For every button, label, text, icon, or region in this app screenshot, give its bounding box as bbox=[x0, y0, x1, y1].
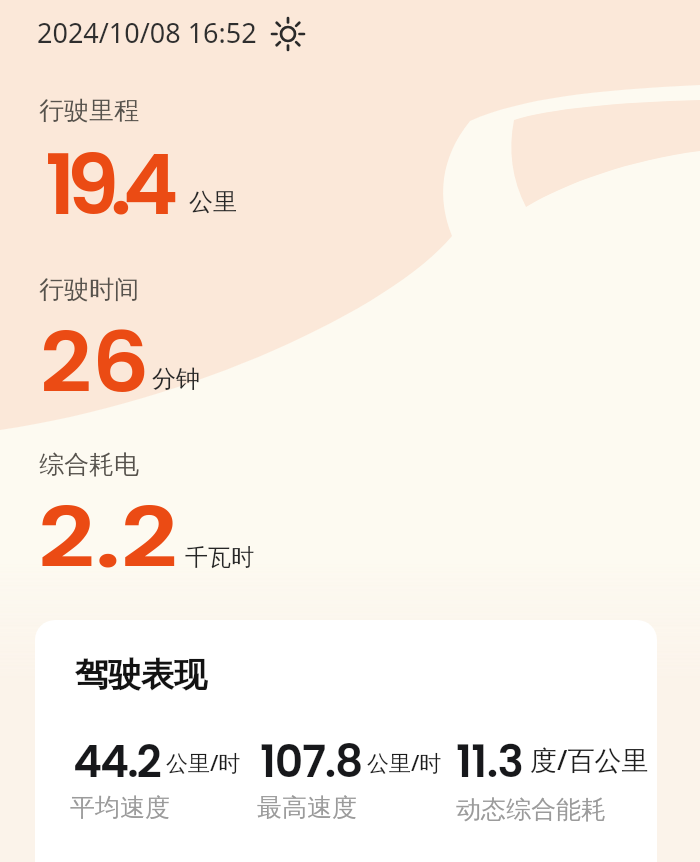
staticText: 分钟 bbox=[152, 364, 200, 394]
button[interactable]: 2024/10/08 16:52 bbox=[30, 10, 250, 47]
staticText: 2024/10/08 16:52 bbox=[37, 14, 257, 51]
staticText: 千瓦时 bbox=[185, 543, 254, 572]
staticText: 公里 bbox=[189, 187, 237, 217]
staticText: 综合耗电 bbox=[39, 449, 139, 480]
staticText: 公里/时 bbox=[367, 747, 442, 777]
staticText: 平均速度 bbox=[70, 792, 170, 823]
staticText: 度/百公里 bbox=[530, 741, 649, 778]
button[interactable]: 驾驶表现 bbox=[35, 620, 657, 862]
staticText: 最高速度 bbox=[257, 792, 357, 823]
staticText: 11.3 bbox=[456, 731, 524, 793]
staticText: 动态综合能耗 bbox=[456, 794, 606, 825]
staticText: 公里/时 bbox=[166, 747, 241, 777]
staticText: 2.2 bbox=[38, 479, 178, 597]
staticText: 行驶时间 bbox=[39, 274, 139, 305]
staticText: 19.4 bbox=[45, 126, 170, 244]
staticText: 26 bbox=[40, 304, 150, 422]
staticText: 107.8 bbox=[260, 731, 363, 793]
staticText: 驾驶表现 bbox=[75, 654, 207, 696]
staticText: 44.2 bbox=[73, 731, 160, 793]
button[interactable] bbox=[270, 16, 306, 52]
staticText: 行驶里程 bbox=[39, 95, 139, 126]
